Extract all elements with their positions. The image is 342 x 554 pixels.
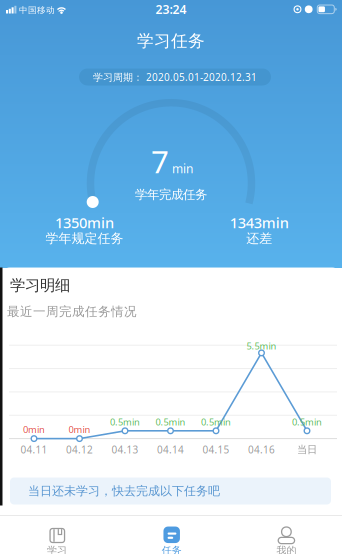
staticText: 1343min [230, 212, 289, 232]
staticText: 04.13 [111, 443, 138, 456]
staticText: min [172, 160, 193, 177]
button[interactable]: 当日还未学习，快去完成以下任务吧 [10, 477, 331, 504]
staticText: 学习明细 [10, 276, 70, 295]
staticText: 0.5min [292, 416, 322, 428]
staticText: 0.5min [110, 416, 140, 428]
staticText: 学习周期： 2020.05.01-2020.12.31 [93, 70, 257, 84]
staticText: 23:24 [155, 1, 186, 18]
staticText: 0.5min [201, 416, 231, 428]
staticText: 7 [151, 140, 169, 182]
staticText: 还差 [246, 230, 272, 247]
staticText: 04.15 [202, 443, 229, 456]
staticText: 中国移动 [19, 5, 55, 16]
staticText: 任务 [162, 544, 182, 554]
staticText: 0.5min [155, 416, 185, 428]
staticText: 04.14 [157, 443, 184, 456]
staticText: 当日 [297, 443, 317, 456]
staticText: 0min [68, 423, 90, 436]
staticText: 04.11 [20, 443, 47, 456]
staticText: 5.5min [246, 340, 276, 352]
staticText: 学习任务 [137, 30, 205, 51]
staticText: 学年规定任务 [45, 230, 123, 247]
staticText: 1350min [55, 212, 114, 232]
staticText: 04.12 [66, 443, 93, 456]
staticText: 04.16 [248, 443, 275, 456]
staticText: 最近一周完成任务情况 [7, 304, 137, 319]
staticText: 学年完成任务 [135, 187, 207, 202]
button[interactable]: 任务 [131, 516, 211, 554]
staticText: 学习 [47, 544, 67, 554]
button[interactable]: 学习 [17, 516, 97, 554]
staticText: 我的 [276, 544, 296, 554]
button[interactable]: 我的 [246, 516, 326, 554]
staticText: 0min [23, 423, 45, 436]
staticText: 当日还未学习，快去完成以下任务吧 [28, 483, 220, 498]
